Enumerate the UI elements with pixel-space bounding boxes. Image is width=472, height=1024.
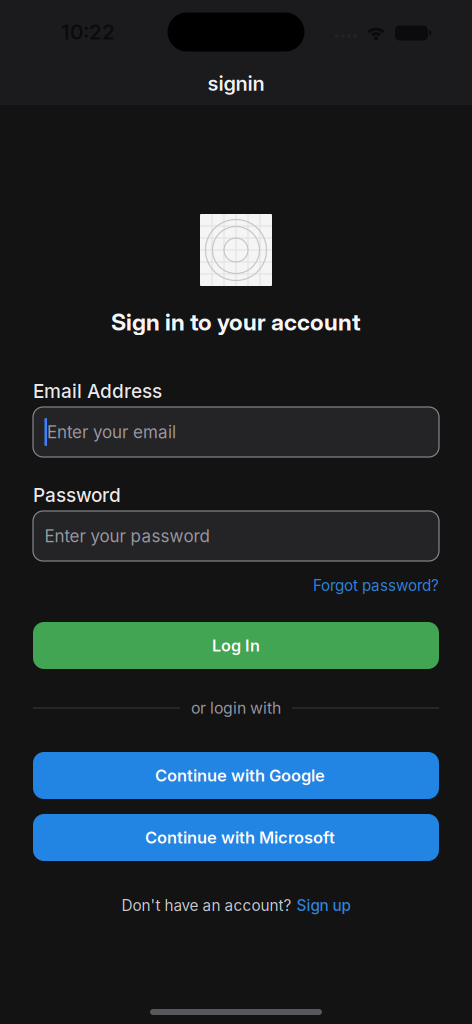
staticText: Sign up: [296, 896, 350, 914]
staticText: 10:22: [61, 20, 115, 44]
staticText: Continue with Google: [155, 766, 325, 785]
staticText: Continue with Microsoft: [145, 828, 335, 847]
staticText: Enter your email: [47, 422, 176, 442]
staticText: Log In: [212, 636, 260, 655]
staticText: Forgot password?: [313, 576, 439, 594]
button[interactable]: Continue with Google: [33, 752, 439, 799]
staticText: Sign in to your account: [111, 308, 361, 336]
button[interactable]: Forgot password?: [313, 576, 439, 595]
button[interactable]: Enter your email: [33, 407, 439, 457]
button[interactable]: Sign up: [296, 896, 350, 914]
staticText: Enter your password: [44, 526, 209, 546]
button[interactable]: Enter your password: [33, 511, 439, 561]
staticText: or login with: [191, 699, 281, 717]
button[interactable]: Log In: [33, 622, 439, 669]
staticText: Don't have an account?: [121, 896, 291, 914]
staticText: signin: [207, 72, 264, 95]
staticText: Password: [33, 484, 121, 506]
staticText: Email Address: [33, 380, 162, 402]
button[interactable]: Continue with Microsoft: [33, 814, 439, 861]
